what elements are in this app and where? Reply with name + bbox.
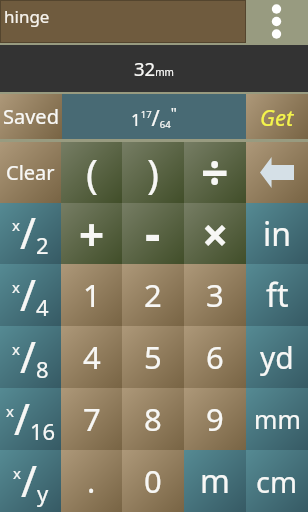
staticText: +: [79, 204, 105, 264]
button[interactable]: mm: [246, 388, 308, 450]
button[interactable]: 8: [122, 388, 184, 450]
staticText: 5: [144, 336, 162, 378]
button[interactable]: 5: [122, 326, 184, 388]
button[interactable]: ft: [246, 264, 308, 326]
button[interactable]: m: [184, 450, 246, 512]
button[interactable]: More options: [256, 0, 308, 45]
staticText: 7: [83, 398, 101, 440]
staticText: 6: [206, 336, 224, 378]
staticText: ×: [202, 203, 229, 264]
button[interactable]: Clear: [0, 142, 61, 203]
staticText: 2: [144, 274, 162, 316]
button[interactable]: x/y: [0, 450, 61, 512]
button[interactable]: Saved: [0, 94, 62, 139]
button[interactable]: yd: [246, 326, 308, 388]
staticText: Clear: [6, 159, 55, 186]
button[interactable]: x/2: [0, 203, 61, 264]
staticText: in: [263, 212, 292, 256]
button[interactable]: x/8: [0, 326, 61, 388]
staticText: x/4: [12, 265, 49, 324]
staticText: Get: [260, 102, 294, 132]
staticText: ): [147, 146, 159, 200]
button[interactable]: cm: [246, 450, 308, 512]
button[interactable]: -: [122, 203, 184, 264]
staticText: yd: [260, 337, 294, 378]
button[interactable]: 1: [61, 264, 122, 326]
staticText: m: [200, 459, 230, 503]
staticText: mm: [254, 402, 301, 436]
staticText: 8: [144, 398, 162, 440]
button[interactable]: x/4: [0, 264, 61, 326]
staticText: x/y: [13, 451, 49, 510]
button[interactable]: ×: [184, 203, 246, 264]
staticText: 0: [144, 460, 162, 502]
staticText: 9: [206, 398, 224, 440]
staticText: -: [145, 200, 161, 261]
staticText: hinge: [4, 5, 50, 28]
button[interactable]: 3: [184, 264, 246, 326]
button[interactable]: Get: [246, 94, 308, 139]
staticText: x/16: [6, 389, 56, 448]
staticText: 3: [206, 274, 224, 316]
staticText: (: [86, 146, 98, 200]
button[interactable]: 4: [61, 326, 122, 388]
button[interactable]: in: [246, 203, 308, 264]
staticText: x/2: [12, 203, 49, 262]
button[interactable]: 117/64": [62, 94, 246, 139]
staticText: .: [87, 460, 96, 502]
button[interactable]: 6: [184, 326, 246, 388]
button[interactable]: .: [61, 450, 122, 512]
button[interactable]: Backspace: [246, 142, 308, 203]
button[interactable]: +: [61, 203, 122, 264]
staticText: cm: [256, 462, 298, 501]
staticText: Saved: [3, 103, 59, 130]
button[interactable]: x/16: [0, 388, 61, 450]
button[interactable]: hinge: [1, 1, 245, 42]
button[interactable]: 0: [122, 450, 184, 512]
button[interactable]: 7: [61, 388, 122, 450]
staticText: 4: [83, 336, 101, 378]
button[interactable]: 9: [184, 388, 246, 450]
staticText: 32mm: [134, 56, 174, 81]
staticText: ft: [266, 273, 289, 317]
staticText: ÷: [201, 139, 229, 200]
button[interactable]: ): [122, 142, 184, 203]
staticText: x/8: [12, 327, 49, 386]
staticText: 1: [83, 274, 101, 316]
button[interactable]: ÷: [184, 142, 246, 203]
button[interactable]: (: [61, 142, 122, 203]
button[interactable]: 2: [122, 264, 184, 326]
staticText: 117/64": [131, 102, 177, 132]
